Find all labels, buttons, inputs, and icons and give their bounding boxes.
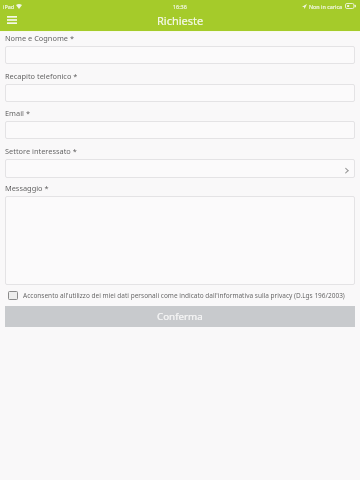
button[interactable] — [5, 84, 355, 102]
staticText: Messaggio * — [5, 183, 49, 193]
staticText: Email * — [5, 108, 30, 118]
button[interactable]: Menu — [0, 10, 24, 30]
staticText: Recapito telefonico * — [5, 71, 78, 81]
button[interactable]: Conferma — [5, 306, 355, 327]
staticText: iPad — [3, 3, 14, 10]
staticText: Nome e Cognome * — [5, 33, 74, 43]
staticText: 16:36 — [173, 3, 187, 10]
button[interactable] — [5, 159, 355, 178]
staticText: Richieste — [157, 13, 204, 28]
staticText: Non in carica — [309, 3, 343, 10]
button[interactable] — [5, 196, 355, 285]
button[interactable] — [5, 46, 355, 64]
button[interactable]: Acconsento all'utilizzo dei miei dati pe… — [8, 287, 360, 304]
staticText: Acconsento all'utilizzo dei miei dati pe… — [23, 291, 345, 300]
button[interactable] — [5, 121, 355, 139]
staticText: Settore interessato * — [5, 146, 77, 156]
staticText: Conferma — [157, 310, 203, 323]
